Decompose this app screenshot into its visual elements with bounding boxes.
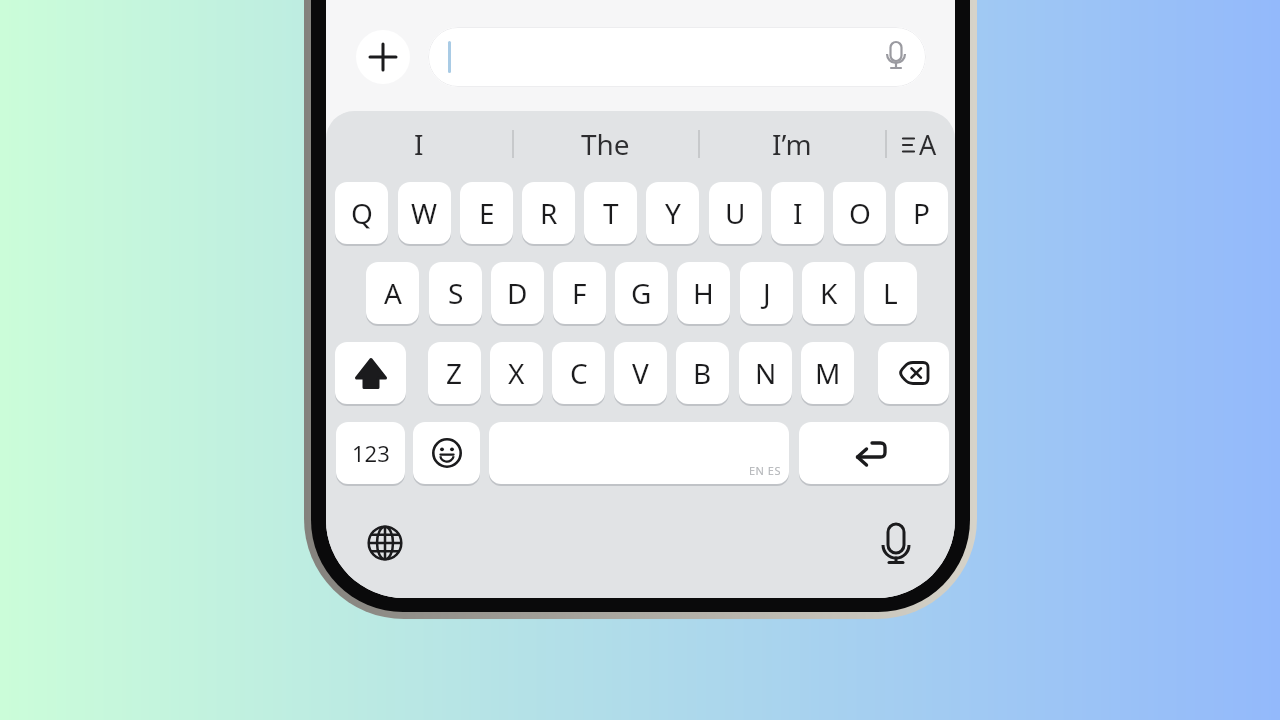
staticText: B (693, 354, 712, 392)
staticText: L (883, 274, 898, 312)
staticText: S (448, 274, 464, 312)
button[interactable]: 123 (336, 422, 405, 484)
staticText: X (508, 354, 525, 392)
button[interactable]: I (771, 182, 824, 244)
button[interactable]: R (522, 182, 575, 244)
staticText: Q (351, 194, 373, 232)
staticText: I (793, 194, 803, 232)
button[interactable]: T (584, 182, 637, 244)
button[interactable]: L (864, 262, 917, 324)
staticText: U (725, 194, 746, 232)
button[interactable]: Q (335, 182, 388, 244)
staticText: T (603, 194, 619, 232)
button[interactable]: X (490, 342, 543, 404)
staticText: G (631, 274, 652, 312)
staticText: E (479, 194, 495, 232)
staticText: R (540, 194, 558, 232)
staticText: I’m (772, 125, 812, 163)
button[interactable] (335, 342, 406, 404)
button[interactable]: U (709, 182, 762, 244)
button[interactable]: B (676, 342, 729, 404)
button[interactable] (365, 523, 405, 563)
button[interactable]: D (491, 262, 544, 324)
button[interactable]: F (553, 262, 606, 324)
button[interactable]: H (677, 262, 730, 324)
button[interactable]: J (740, 262, 793, 324)
button[interactable]: A (885, 116, 955, 172)
staticText: M (815, 354, 841, 392)
button[interactable]: I (326, 116, 512, 172)
staticText: W (411, 194, 438, 232)
button[interactable]: W (398, 182, 451, 244)
button[interactable]: Z (428, 342, 481, 404)
button[interactable] (878, 342, 949, 404)
staticText: Y (665, 194, 681, 232)
staticText: 123 (352, 438, 390, 468)
button[interactable] (874, 521, 918, 565)
button[interactable]: V (614, 342, 667, 404)
button[interactable]: M (801, 342, 854, 404)
staticText: Z (446, 354, 463, 392)
button[interactable] (428, 27, 926, 87)
button[interactable]: S (429, 262, 482, 324)
staticText: P (913, 194, 930, 232)
button[interactable]: C (552, 342, 605, 404)
button[interactable]: The (512, 116, 698, 172)
staticText: C (570, 354, 588, 392)
staticText: A (919, 126, 937, 163)
staticText: H (693, 274, 714, 312)
staticText: K (820, 274, 838, 312)
button[interactable] (356, 30, 410, 84)
staticText: A (384, 274, 402, 312)
button[interactable]: P (895, 182, 948, 244)
staticText: EN ES (749, 463, 781, 478)
button[interactable]: I’m (698, 116, 885, 172)
staticText: The (581, 125, 630, 163)
button[interactable]: EN ES (489, 422, 789, 484)
button[interactable]: Y (646, 182, 699, 244)
staticText: F (572, 274, 587, 312)
staticText: J (763, 274, 771, 312)
staticText: D (507, 274, 528, 312)
button[interactable]: E (460, 182, 513, 244)
button[interactable]: O (833, 182, 886, 244)
staticText: I (414, 125, 424, 163)
button[interactable]: A (366, 262, 419, 324)
button[interactable] (413, 422, 480, 484)
button[interactable]: G (615, 262, 668, 324)
button[interactable]: N (739, 342, 792, 404)
button[interactable]: K (802, 262, 855, 324)
button[interactable] (799, 422, 949, 484)
staticText: V (632, 354, 649, 392)
staticText: N (755, 354, 777, 392)
staticText: O (849, 194, 871, 232)
